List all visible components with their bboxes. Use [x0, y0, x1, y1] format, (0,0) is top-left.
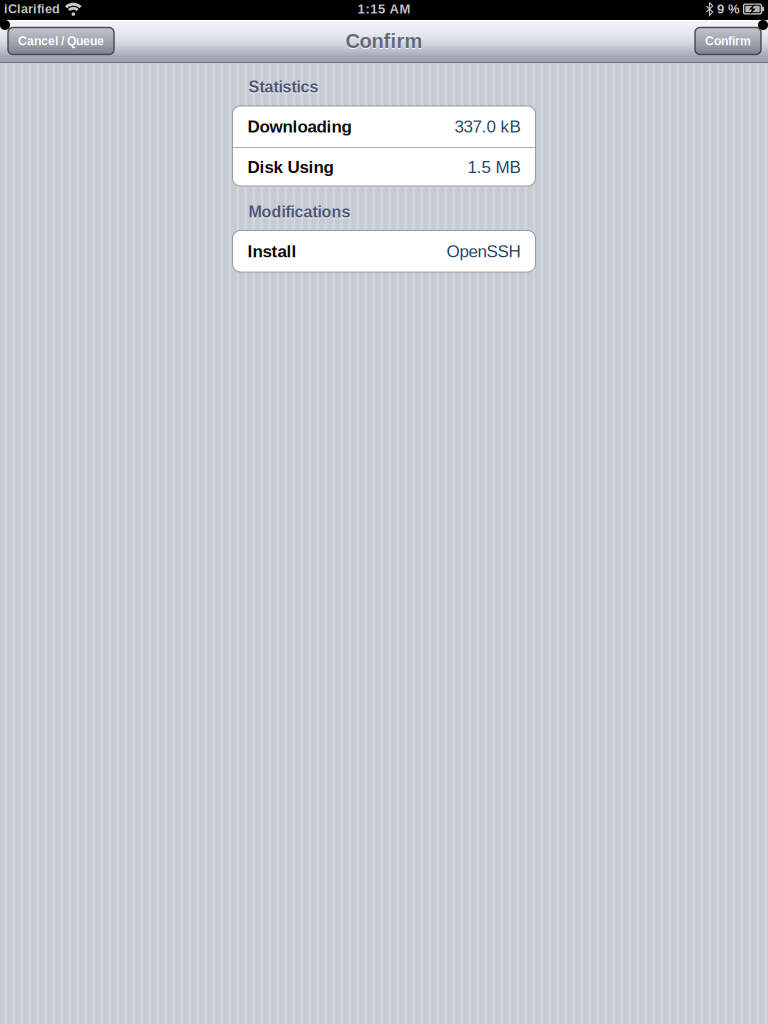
staticText: Confirm: [705, 34, 751, 48]
staticText: Confirm: [345, 30, 422, 52]
staticText: Modifications: [248, 203, 350, 221]
staticText: OpenSSH: [446, 242, 520, 261]
staticText: Modifications: [248, 204, 350, 222]
button[interactable]: Cancel or Queue: [8, 27, 114, 54]
staticText: 337.0 kB: [454, 117, 520, 136]
staticText: Disk Using: [247, 157, 333, 176]
staticText: iClarified: [4, 2, 60, 16]
staticText: 1.5 MB: [467, 157, 520, 176]
button[interactable]: Install: [232, 230, 535, 272]
staticText: Downloading: [247, 117, 351, 136]
button[interactable]: Disk Using: [232, 148, 535, 186]
staticText: Statistics: [248, 79, 318, 97]
button[interactable]: Downloading: [232, 106, 535, 147]
staticText: Confirm: [345, 31, 422, 53]
staticText: Install: [247, 242, 296, 261]
staticText: 1:15 AM: [358, 2, 410, 16]
button[interactable]: Confirm: [695, 27, 761, 54]
staticText: 9 %: [717, 2, 740, 16]
staticText: Statistics: [248, 78, 318, 96]
staticText: Cancel / Queue: [18, 34, 104, 48]
